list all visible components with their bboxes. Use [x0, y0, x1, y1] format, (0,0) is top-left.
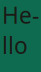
staticText: Hello — [2, 0, 39, 60]
